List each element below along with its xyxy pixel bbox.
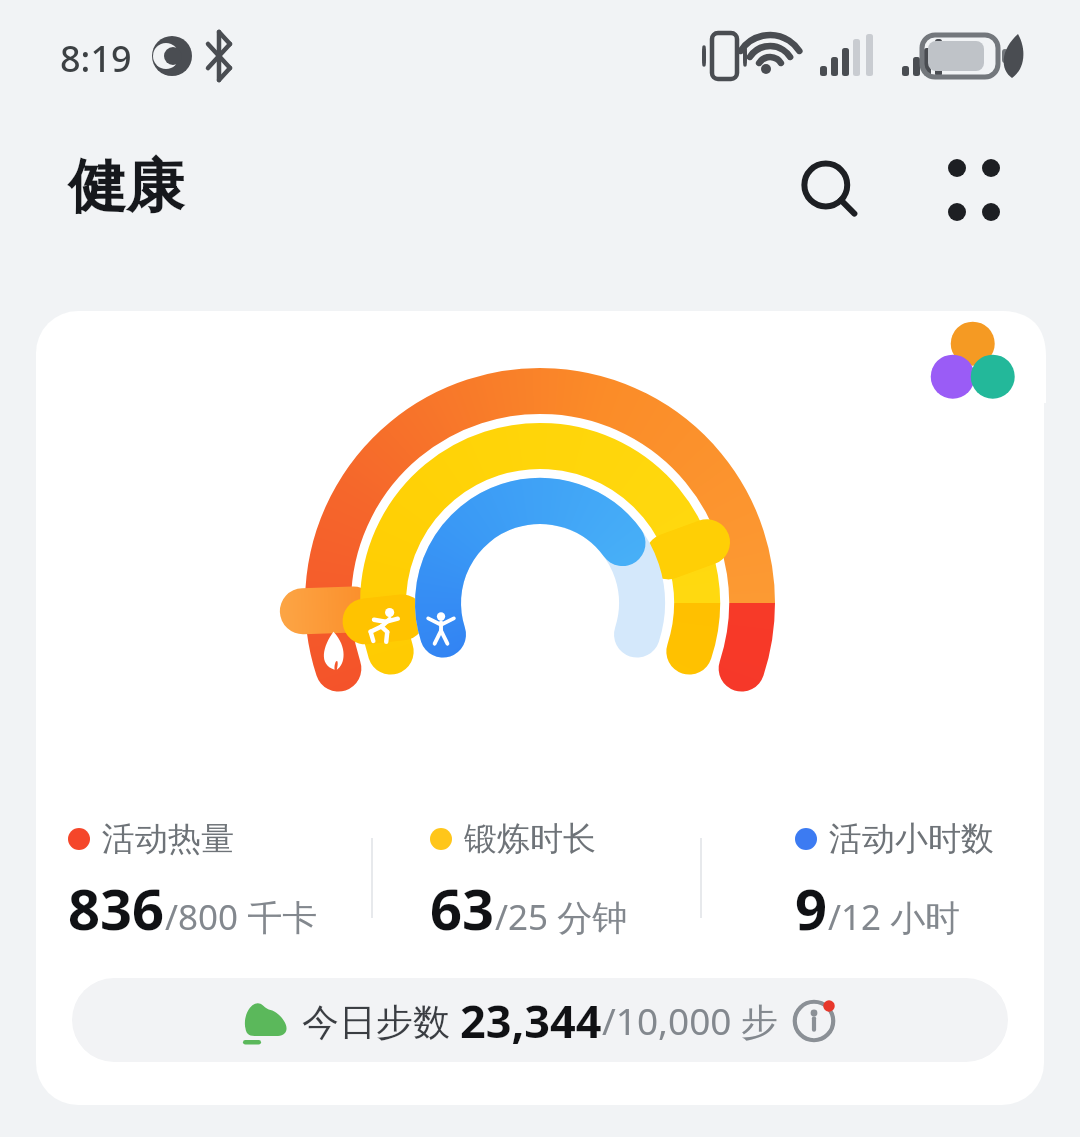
staticText: 23,344 xyxy=(460,990,602,1051)
button[interactable] xyxy=(36,311,1044,1105)
staticText: /25 分钟 xyxy=(495,893,628,941)
staticText: 健康 xyxy=(68,150,184,223)
button[interactable]: Search xyxy=(788,148,872,232)
staticText: 836 xyxy=(68,870,165,946)
staticText: 锻炼时长 xyxy=(464,818,596,860)
button[interactable]: 活动小时数 xyxy=(795,818,994,946)
staticText: /10,000 步 xyxy=(602,995,788,1046)
staticText: 活动小时数 xyxy=(829,818,994,860)
staticText: /800 千卡 xyxy=(165,893,318,941)
button[interactable]: 锻炼时长 xyxy=(430,818,628,946)
staticText: 9 xyxy=(795,870,828,946)
staticText: 今日步数 xyxy=(302,995,460,1046)
button[interactable]: More options xyxy=(932,148,1016,232)
staticText: 63 xyxy=(430,870,495,946)
staticText: /12 小时 xyxy=(828,893,961,941)
button[interactable]: Health apps xyxy=(898,309,1046,403)
button[interactable]: 今日步数 xyxy=(72,978,1008,1062)
staticText: 活动热量 xyxy=(102,818,234,860)
button[interactable]: 活动热量 xyxy=(68,818,318,946)
staticText: 8:19 xyxy=(60,34,132,83)
button[interactable]: Info xyxy=(788,995,840,1047)
